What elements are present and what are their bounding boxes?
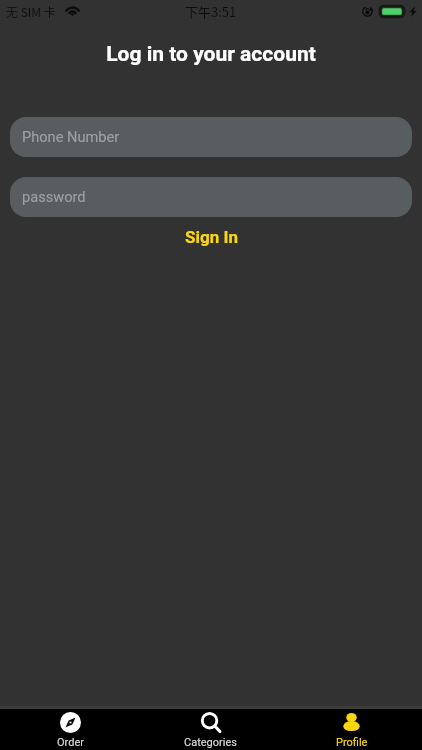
staticText: Profile <box>336 736 368 749</box>
staticText: Categories <box>184 736 237 749</box>
button[interactable]: Sign In <box>171 222 252 252</box>
button[interactable]: Categories tab <box>140 709 281 750</box>
staticText: 下午3:51 <box>185 2 237 21</box>
button[interactable]: password <box>10 177 412 217</box>
button[interactable]: Phone Number <box>10 117 412 157</box>
button[interactable]: Order tab <box>0 709 140 750</box>
staticText: Order <box>57 736 84 749</box>
staticText: Sign In <box>185 227 238 247</box>
staticText: Phone Number <box>22 128 120 145</box>
staticText: Log in to your account <box>0 42 422 67</box>
staticText: password <box>22 188 86 205</box>
button[interactable]: Profile tab <box>281 709 422 750</box>
staticText: 无 SIM 卡 <box>6 3 56 20</box>
